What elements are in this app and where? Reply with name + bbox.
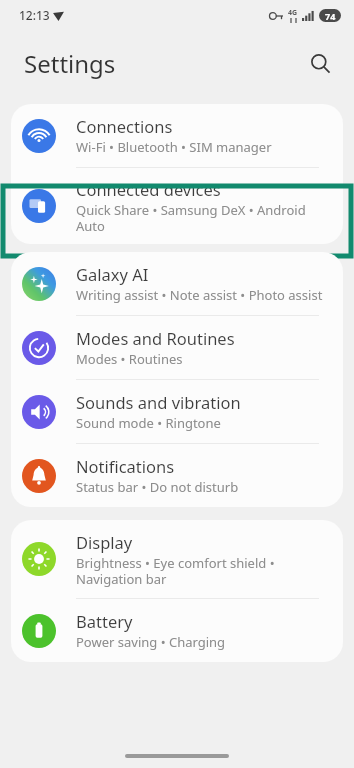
staticText: Modes and Routines bbox=[76, 327, 235, 349]
button[interactable]: Notifications bbox=[11, 444, 343, 507]
staticText: Battery bbox=[76, 610, 133, 632]
staticText: 12:13 bbox=[19, 7, 50, 23]
staticText: Modes • Routines bbox=[76, 350, 183, 368]
staticText: 4G bbox=[288, 8, 298, 18]
button[interactable]: Modes and Routines bbox=[11, 316, 343, 380]
button[interactable]: Battery bbox=[11, 599, 343, 662]
staticText: Notifications bbox=[76, 455, 175, 477]
staticText: Status bar • Do not disturb bbox=[76, 478, 239, 496]
staticText: Connected devices bbox=[76, 178, 221, 200]
staticText: Display bbox=[76, 531, 133, 553]
staticText: Connections bbox=[76, 115, 173, 137]
staticText: Brightness • Eye comfort shield • Naviga… bbox=[76, 554, 327, 587]
staticText: Settings bbox=[24, 47, 116, 80]
button[interactable]: Connected devices bbox=[11, 168, 343, 244]
button[interactable]: Sounds and vibration bbox=[11, 380, 343, 444]
staticText: Galaxy AI bbox=[76, 263, 149, 285]
staticText: Quick Share • Samsung DeX • Android Auto bbox=[76, 201, 327, 234]
button[interactable]: Connections bbox=[11, 104, 343, 168]
staticText: Wi-Fi • Bluetooth • SIM manager bbox=[76, 138, 272, 156]
staticText: Sounds and vibration bbox=[76, 391, 241, 413]
button[interactable]: Display bbox=[11, 520, 343, 599]
staticText: 74 bbox=[325, 10, 336, 22]
button[interactable]: Search bbox=[298, 41, 342, 85]
staticText: Writing assist • Note assist • Photo ass… bbox=[76, 286, 323, 304]
staticText: Sound mode • Ringtone bbox=[76, 414, 221, 432]
button[interactable]: Galaxy AI bbox=[11, 252, 343, 316]
staticText: Power saving • Charging bbox=[76, 633, 226, 651]
